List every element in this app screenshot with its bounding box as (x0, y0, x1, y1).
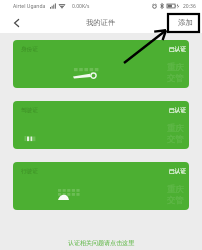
staticText: 行驶证 (21, 168, 38, 175)
staticText: 驾驶证 (21, 107, 38, 114)
staticText: 20:36 (183, 3, 196, 10)
staticText: 交管 (167, 195, 184, 206)
staticText: 我的证件 (86, 18, 116, 27)
staticText: 重庆 (167, 123, 184, 134)
staticText: 认证相关问题请点击这里 (68, 239, 134, 247)
staticText: 已认证 (169, 107, 186, 114)
button[interactable]: 认证相关问题请点击这里 (0, 239, 202, 247)
staticText: 已认证 (169, 46, 186, 53)
staticText: 交管 (167, 73, 184, 84)
button[interactable]: Back (6, 12, 27, 33)
staticText: 0.00K/s (72, 3, 90, 10)
staticText: 交管 (167, 134, 184, 145)
staticText: 身份证 (21, 46, 38, 53)
button[interactable]: 重庆 (13, 101, 189, 149)
button[interactable]: 添加 (178, 18, 193, 27)
staticText: 重庆 (167, 184, 184, 195)
staticText: 添加 (178, 18, 193, 27)
staticText: 已认证 (169, 168, 186, 175)
staticText: Airtel Uganda (13, 3, 46, 10)
button[interactable]: 重庆 (13, 162, 189, 210)
staticText: 重庆 (167, 62, 184, 73)
button[interactable]: 重庆 (13, 40, 189, 88)
